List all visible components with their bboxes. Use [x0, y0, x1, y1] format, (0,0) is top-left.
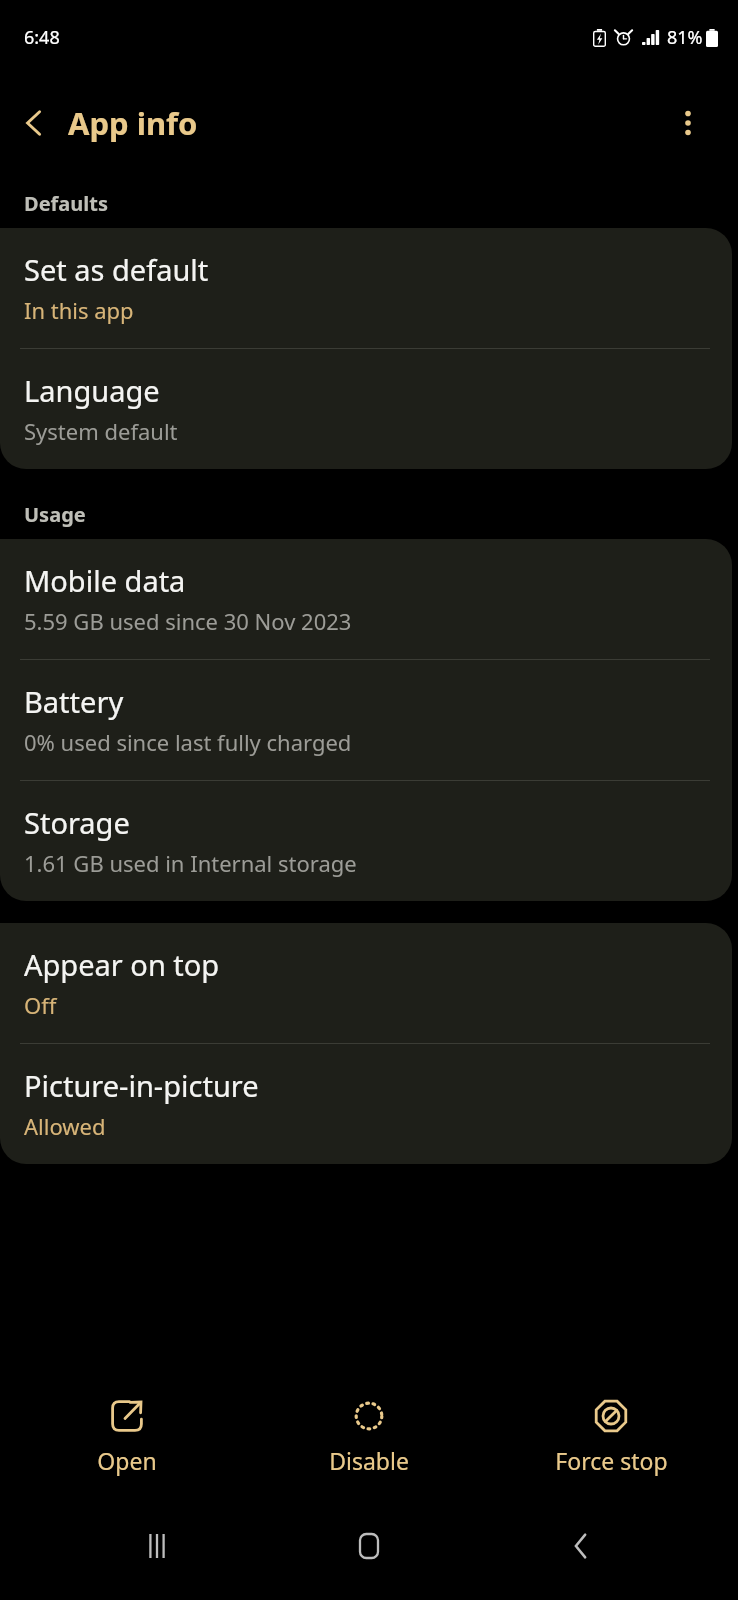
staticText: Picture-in-picture — [24, 1066, 259, 1105]
staticText: 81% — [667, 25, 703, 50]
button[interactable]: Recent apps — [102, 1492, 212, 1600]
staticText: Appear on top — [24, 945, 220, 984]
button[interactable]: More options — [660, 95, 716, 151]
button[interactable]: Mobile data — [0, 539, 732, 659]
button[interactable]: Appear on top — [0, 923, 732, 1043]
staticText: 6:48 — [24, 25, 60, 50]
staticText: Battery — [24, 682, 124, 721]
button[interactable]: Force stop — [496, 1392, 726, 1480]
button[interactable]: Back — [526, 1492, 636, 1600]
staticText: Language — [24, 371, 160, 410]
staticText: Defaults — [24, 190, 108, 217]
button[interactable]: Battery — [0, 660, 732, 780]
button[interactable]: Language — [0, 349, 732, 469]
button[interactable]: Set as default — [0, 228, 732, 348]
staticText: 0% used since last fully charged — [24, 727, 352, 757]
button[interactable]: Home — [314, 1492, 424, 1600]
button[interactable]: Storage — [0, 781, 732, 901]
button[interactable]: Picture-in-picture — [0, 1044, 732, 1164]
staticText: Off — [24, 990, 57, 1020]
staticText: 5.59 GB used since 30 Nov 2023 — [24, 606, 352, 636]
staticText: Mobile data — [24, 561, 186, 600]
staticText: Usage — [24, 501, 86, 528]
staticText: System default — [24, 416, 178, 446]
staticText: Storage — [24, 803, 130, 842]
staticText: Disable — [329, 1445, 409, 1476]
staticText: Set as default — [24, 250, 209, 289]
staticText: In this app — [24, 295, 134, 325]
button[interactable]: Open — [12, 1392, 242, 1480]
staticText: App info — [68, 102, 198, 144]
staticText: Open — [97, 1445, 157, 1476]
staticText: Allowed — [24, 1111, 106, 1141]
button[interactable]: Disable — [254, 1392, 484, 1480]
button[interactable]: Navigate up — [0, 89, 68, 157]
staticText: Force stop — [555, 1445, 668, 1476]
staticText: 1.61 GB used in Internal storage — [24, 848, 357, 878]
